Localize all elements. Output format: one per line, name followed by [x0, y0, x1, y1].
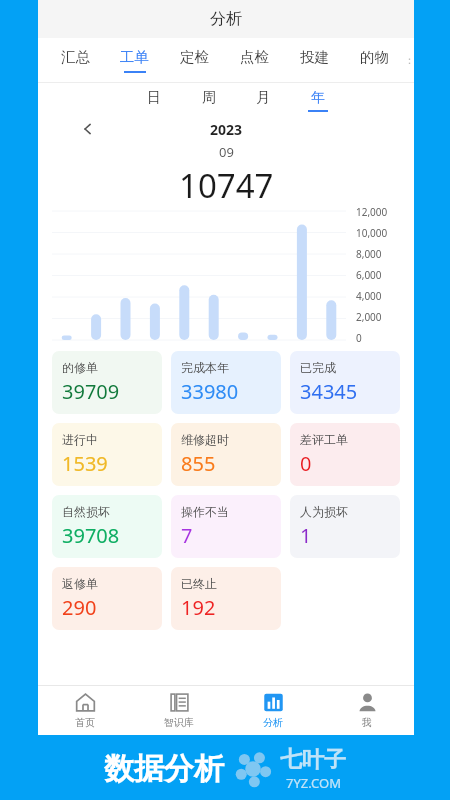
button[interactable]: 自然损坏 — [52, 495, 162, 558]
staticText: 2023 — [210, 120, 243, 139]
staticText: 的修单 — [62, 360, 98, 375]
staticText: 2,000 — [356, 310, 382, 324]
staticText: 自然损坏 — [62, 504, 110, 519]
button[interactable]: 工单 — [105, 38, 164, 82]
staticText: 39708 — [62, 522, 120, 549]
staticText: 855 — [181, 450, 216, 477]
staticText: 已完成 — [300, 360, 336, 375]
staticText: 智识库 — [164, 716, 194, 729]
button[interactable]: 进行中 — [52, 423, 162, 486]
staticText: 首页 — [75, 716, 95, 729]
staticText: 月 — [256, 89, 270, 107]
staticText: 6,000 — [356, 268, 382, 282]
button[interactable]: 首页 — [38, 685, 132, 735]
staticText: ： — [404, 53, 414, 67]
staticText: 我 — [362, 716, 372, 729]
staticText: 操作不当 — [181, 504, 229, 519]
staticText: 人为损坏 — [300, 504, 348, 519]
staticText: 4,000 — [356, 289, 382, 303]
button[interactable]: 分析 — [226, 685, 320, 735]
staticText: 0 — [356, 331, 362, 345]
button[interactable]: 智识库 — [132, 685, 226, 735]
staticText: 完成本年 — [181, 360, 229, 375]
staticText: 分析 — [263, 716, 283, 729]
button[interactable]: Previous — [76, 117, 100, 141]
staticText: 日 — [147, 89, 161, 107]
staticText: 年 — [311, 89, 325, 107]
button[interactable]: 操作不当 — [171, 495, 281, 558]
staticText: 汇总 — [61, 48, 90, 66]
staticText: 进行中 — [62, 432, 98, 447]
staticText: 投建 — [300, 48, 329, 66]
staticText: 维修超时 — [181, 432, 229, 447]
button[interactable]: 汇总 — [46, 38, 105, 82]
staticText: 7YZ.COM — [286, 774, 341, 792]
staticText: 分析 — [210, 9, 242, 29]
button[interactable]: 已完成 — [290, 351, 400, 414]
button[interactable]: 的物 — [344, 38, 404, 82]
staticText: 10,000 — [356, 226, 388, 240]
staticText: 8,000 — [356, 247, 382, 261]
button[interactable]: 我 — [320, 685, 414, 735]
staticText: 192 — [181, 594, 216, 621]
staticText: 数据分析 — [104, 750, 224, 788]
staticText: 12,000 — [356, 205, 388, 219]
staticText: 290 — [62, 594, 97, 621]
staticText: 差评工单 — [300, 432, 348, 447]
button[interactable]: 月 — [247, 89, 279, 112]
button[interactable]: 点检 — [224, 38, 284, 82]
staticText: 39709 — [62, 378, 120, 405]
staticText: 周 — [202, 89, 216, 107]
button[interactable]: 完成本年 — [171, 351, 281, 414]
staticText: 10747 — [179, 163, 274, 205]
button[interactable]: 定检 — [164, 38, 224, 82]
button[interactable]: 年 — [302, 89, 334, 112]
staticText: 34345 — [300, 378, 358, 405]
button[interactable]: 投建 — [284, 38, 344, 82]
button[interactable]: 的修单 — [52, 351, 162, 414]
staticText: 已终止 — [181, 576, 217, 591]
staticText: 七叶子 — [280, 746, 346, 774]
staticText: 1 — [300, 522, 312, 549]
staticText: 定检 — [180, 48, 209, 66]
button[interactable]: 已终止 — [171, 567, 281, 630]
button[interactable]: 周 — [193, 89, 225, 112]
staticText: 1539 — [62, 450, 108, 477]
staticText: 09 — [219, 143, 234, 161]
button[interactable]: 人为损坏 — [290, 495, 400, 558]
button[interactable]: 差评工单 — [290, 423, 400, 486]
staticText: 的物 — [360, 48, 389, 66]
staticText: 工单 — [120, 48, 149, 66]
staticText: 点检 — [240, 48, 269, 66]
staticText: 0 — [300, 450, 312, 477]
staticText: 返修单 — [62, 576, 98, 591]
button[interactable]: 日 — [138, 89, 170, 112]
staticText: 7 — [181, 522, 193, 549]
button[interactable]: 返修单 — [52, 567, 162, 630]
button[interactable]: 维修超时 — [171, 423, 281, 486]
staticText: 33980 — [181, 378, 239, 405]
